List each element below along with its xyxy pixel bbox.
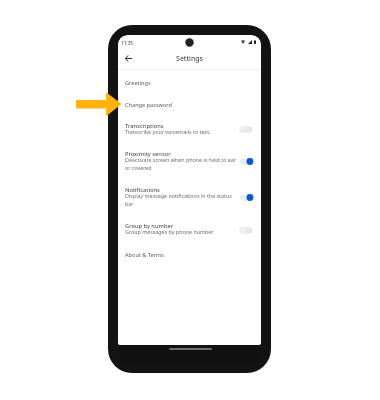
button[interactable]: Transcriptions bbox=[118, 120, 261, 139]
staticText: 11:35 bbox=[121, 40, 134, 46]
button[interactable]: Switch on bbox=[239, 192, 256, 203]
button[interactable]: Group by number bbox=[118, 220, 261, 239]
button[interactable]: Back bbox=[121, 51, 135, 65]
staticText: Display message notifications in the sta… bbox=[125, 192, 232, 199]
button[interactable]: Switch off bbox=[239, 124, 256, 135]
staticText: Group messages by phone number bbox=[125, 228, 214, 235]
staticText: Deactivate screen when phone is held to … bbox=[125, 156, 236, 163]
button[interactable]: Greetings bbox=[118, 79, 261, 92]
staticText: Greetings bbox=[125, 79, 151, 87]
staticText: Proximity sensor bbox=[125, 150, 171, 158]
button[interactable]: Notifications bbox=[118, 184, 261, 210]
button[interactable]: About & Terms bbox=[118, 250, 261, 263]
staticText: or covered bbox=[125, 164, 152, 171]
button[interactable]: Switch off bbox=[239, 225, 256, 236]
staticText: Notifications bbox=[125, 186, 160, 194]
staticText: Group by number bbox=[125, 222, 174, 230]
staticText: Settings bbox=[118, 54, 261, 63]
staticText: Change password bbox=[125, 101, 172, 109]
staticText: Transcribe your voicemails to text. bbox=[125, 128, 211, 135]
staticText: bar bbox=[125, 200, 134, 207]
staticText: Transcriptions bbox=[125, 122, 164, 130]
staticText: About & Terms bbox=[125, 251, 164, 259]
button[interactable]: Change password bbox=[118, 101, 261, 114]
button[interactable]: Proximity sensor bbox=[118, 148, 261, 174]
button[interactable]: Switch on bbox=[239, 156, 256, 167]
